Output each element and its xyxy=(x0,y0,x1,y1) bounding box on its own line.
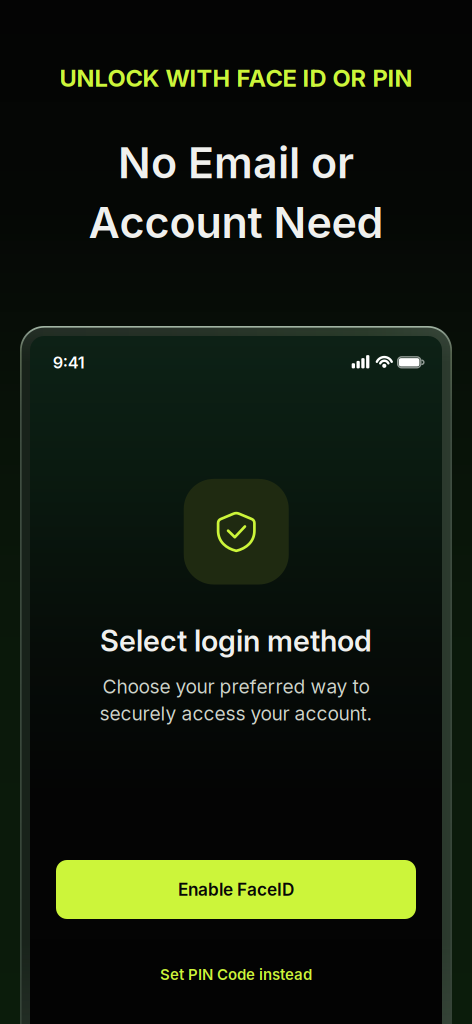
button[interactable]: Set PIN Code instead xyxy=(126,957,346,991)
staticText: 9:41 xyxy=(53,353,85,372)
staticText: Choose your preferred way to xyxy=(102,675,369,698)
button[interactable]: Enable FaceID xyxy=(56,860,416,919)
staticText: Enable FaceID xyxy=(178,879,294,900)
staticText: UNLOCK WITH FACE ID OR PIN xyxy=(59,64,412,92)
staticText: Select login method xyxy=(100,623,372,658)
staticText: securely access your account. xyxy=(99,702,372,725)
staticText: Set PIN Code instead xyxy=(160,965,312,983)
staticText: No Email or xyxy=(118,136,354,189)
staticText: Account Need xyxy=(88,196,383,248)
